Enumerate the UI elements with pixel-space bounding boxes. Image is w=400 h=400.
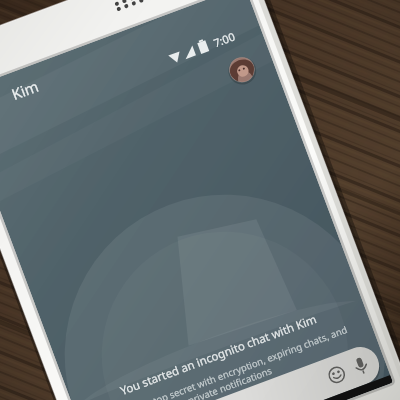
button[interactable]: Incognito chat with Kim on phone [0, 0, 400, 400]
